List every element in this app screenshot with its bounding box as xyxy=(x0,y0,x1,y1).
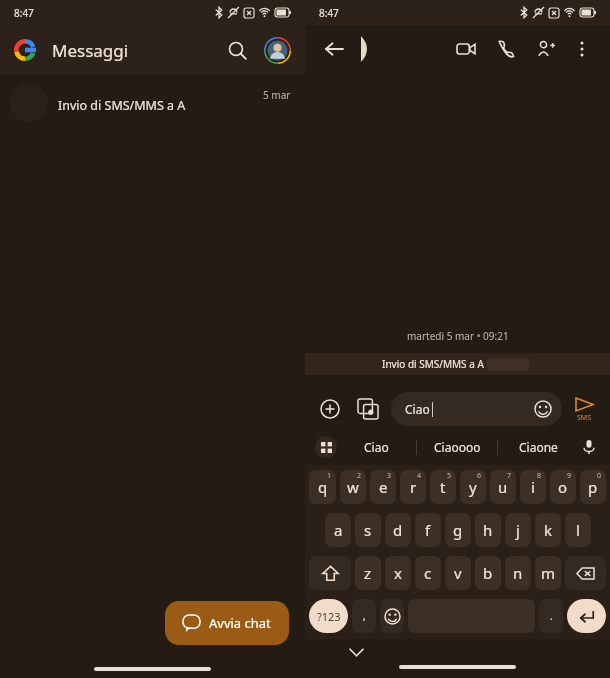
button[interactable]: i xyxy=(520,470,546,504)
staticText: 3 xyxy=(387,471,392,481)
staticText: Messaggi xyxy=(52,39,129,62)
staticText: n xyxy=(513,563,523,583)
button[interactable]: j xyxy=(505,513,531,547)
staticText: x xyxy=(394,563,402,583)
button[interactable]: f xyxy=(415,513,441,547)
staticText: y xyxy=(469,477,477,497)
button[interactable]: s xyxy=(355,513,381,547)
staticText: u xyxy=(498,477,508,497)
button[interactable]: n xyxy=(505,556,531,590)
staticText: 0 xyxy=(597,471,602,481)
button[interactable]: a xyxy=(325,513,351,547)
staticText: b xyxy=(483,563,493,583)
staticText: i xyxy=(531,477,535,497)
button[interactable]: Strumenti xyxy=(315,436,337,458)
staticText: 9 xyxy=(567,471,572,481)
staticText: z xyxy=(364,563,372,583)
button[interactable]: b xyxy=(475,556,501,590)
button[interactable]: Ciao xyxy=(337,429,416,465)
button[interactable]: e xyxy=(370,470,396,504)
staticText: g xyxy=(453,520,463,540)
button[interactable]: Invio xyxy=(567,599,606,633)
button[interactable]: Galleria xyxy=(355,396,381,422)
button[interactable]: Emoji xyxy=(534,400,552,418)
staticText: martedì 5 mar • 09:21 xyxy=(407,329,509,343)
button[interactable]: Maiuscole xyxy=(309,556,351,590)
staticText: Ciao xyxy=(364,439,389,455)
button[interactable] xyxy=(361,36,369,62)
staticText: Ciaone xyxy=(519,439,558,455)
button[interactable]: y xyxy=(460,470,486,504)
button[interactable]: c xyxy=(415,556,441,590)
staticText: j xyxy=(516,520,520,540)
staticText: w xyxy=(347,477,359,497)
button[interactable]: Ciaoooo xyxy=(417,429,497,465)
staticText: SMS xyxy=(577,413,592,423)
button[interactable]: d xyxy=(385,513,411,547)
staticText: l xyxy=(576,520,580,540)
button[interactable]: u xyxy=(490,470,516,504)
staticText: 8 xyxy=(537,471,542,481)
button[interactable]: x xyxy=(385,556,411,590)
button[interactable]: r xyxy=(400,470,426,504)
staticText: v xyxy=(454,563,462,583)
staticText: , xyxy=(363,609,366,623)
button[interactable]: Ciao xyxy=(391,392,562,426)
staticText: t xyxy=(440,477,446,497)
staticText: r xyxy=(410,477,417,497)
staticText: m xyxy=(541,563,556,583)
button[interactable]: Altro xyxy=(570,37,594,61)
staticText: c xyxy=(424,563,432,583)
staticText: 8:47 xyxy=(14,6,34,20)
button[interactable]: g xyxy=(445,513,471,547)
staticText: o xyxy=(558,477,568,497)
staticText: Avvia chat xyxy=(209,614,271,632)
staticText: 6 xyxy=(477,471,482,481)
button[interactable]: Cerca xyxy=(222,35,252,65)
button[interactable]: Aggiungi xyxy=(317,396,343,422)
button[interactable]: Chiama xyxy=(494,37,518,61)
button[interactable]: k xyxy=(535,513,561,547)
button[interactable]: Google xyxy=(14,39,36,61)
button[interactable]: Account xyxy=(264,37,291,64)
button[interactable]: Invia SMS xyxy=(570,396,598,423)
staticText: k xyxy=(544,520,553,540)
button[interactable]: Emoji xyxy=(380,599,404,633)
button[interactable]: Invio di SMS/MMS a A xyxy=(0,75,305,131)
button[interactable]: , xyxy=(352,599,376,633)
button[interactable]: Backspace xyxy=(565,556,606,590)
button[interactable]: p xyxy=(580,470,606,504)
staticText: q xyxy=(318,477,328,497)
button[interactable]: Indietro xyxy=(321,36,347,62)
staticText: . xyxy=(550,609,553,623)
staticText: a xyxy=(334,520,343,540)
staticText: 2 xyxy=(357,471,362,481)
staticText: e xyxy=(379,477,388,497)
staticText: Invio di SMS/MMS a A xyxy=(382,357,484,371)
button[interactable]: l xyxy=(565,513,591,547)
button[interactable]: w xyxy=(340,470,366,504)
staticText: ?123 xyxy=(317,609,341,624)
button[interactable]: Ciaone xyxy=(498,429,578,465)
staticText: Invio di SMS/MMS a A xyxy=(58,97,186,114)
button[interactable]: m xyxy=(535,556,561,590)
button[interactable]: h xyxy=(475,513,501,547)
button[interactable]: ?123 xyxy=(309,599,348,633)
button[interactable]: q xyxy=(309,470,336,504)
button[interactable]: t xyxy=(430,470,456,504)
staticText: 7 xyxy=(507,471,512,481)
button[interactable]: Aggiungi persone xyxy=(534,37,558,61)
staticText: h xyxy=(483,520,493,540)
button[interactable]: Dettatura vocale xyxy=(578,436,600,458)
button[interactable]: Avvia chat xyxy=(165,601,289,645)
button[interactable]: v xyxy=(445,556,471,590)
button[interactable]: . xyxy=(539,599,563,633)
button[interactable]: Videochiamata xyxy=(454,37,478,61)
staticText: Ciao xyxy=(405,401,430,417)
staticText: 1 xyxy=(327,471,332,481)
button[interactable]: z xyxy=(355,556,381,590)
button[interactable]: o xyxy=(550,470,576,504)
staticText: 5 mar xyxy=(263,88,291,102)
button[interactable]: Chiudi tastiera xyxy=(345,641,367,663)
